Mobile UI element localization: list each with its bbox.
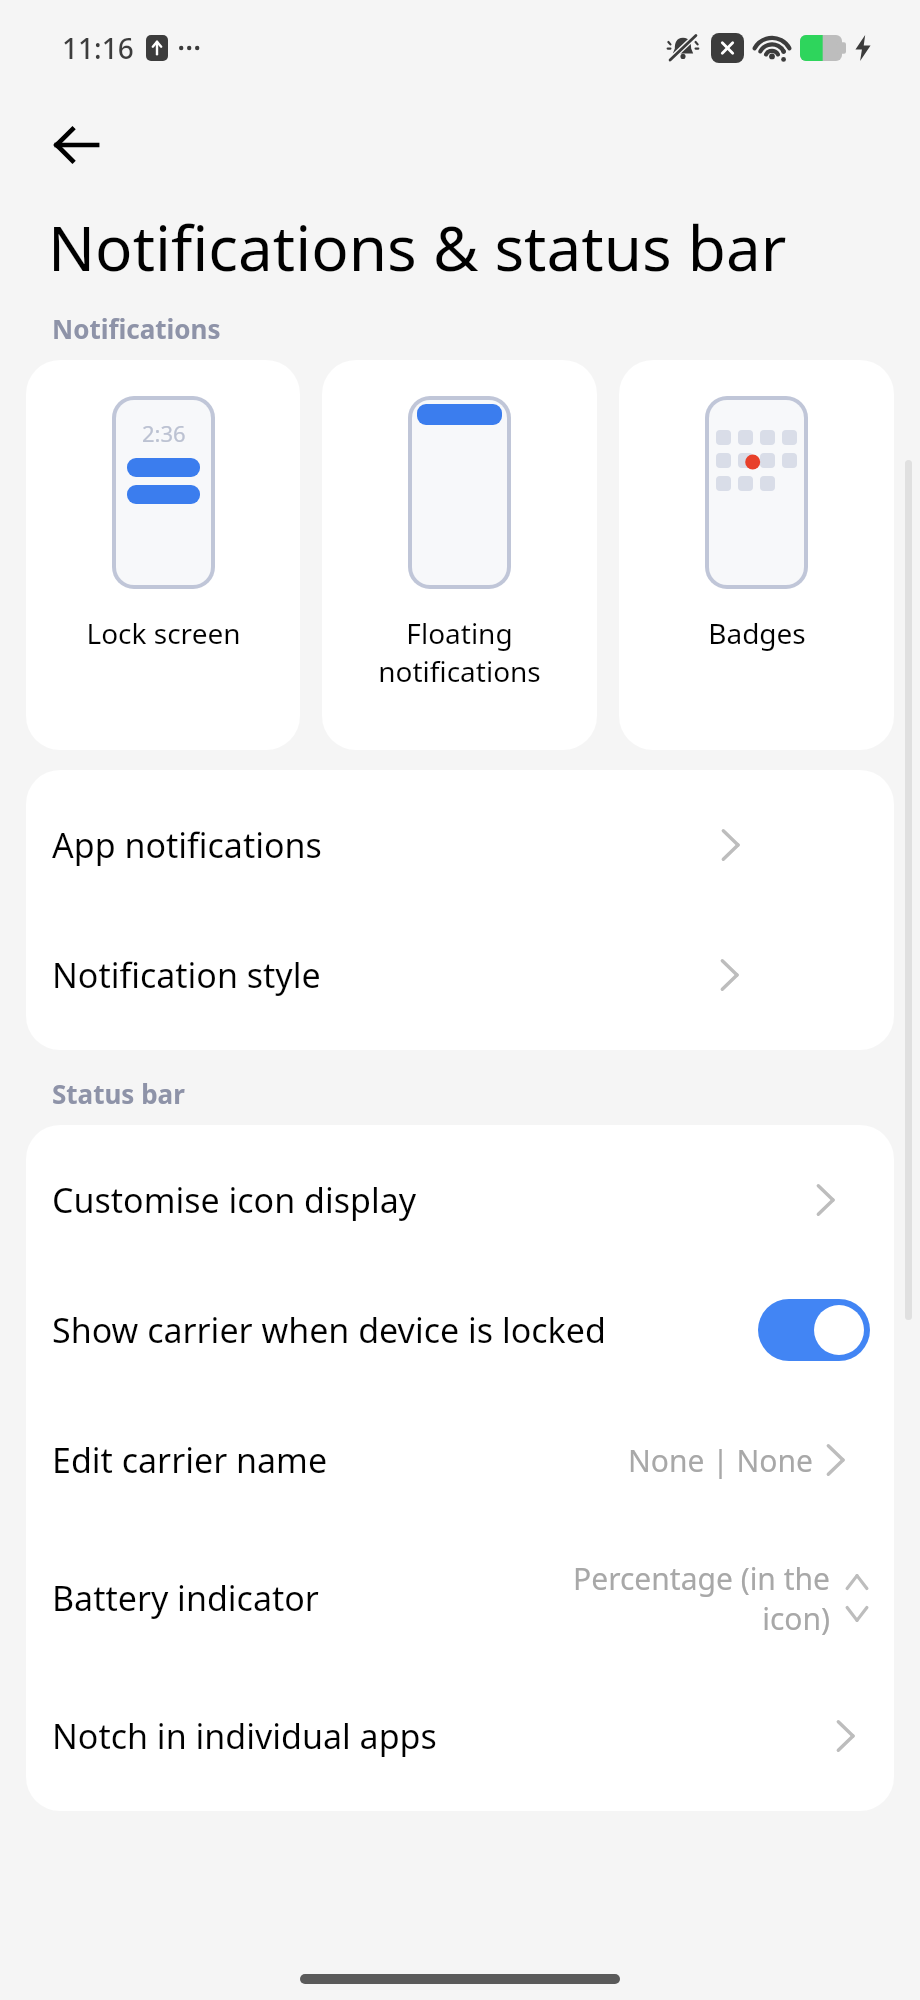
staticText: Show carrier when device is locked (52, 1307, 748, 1353)
staticText: 11:16 (62, 29, 134, 67)
staticText: 2:36 (142, 418, 186, 448)
button[interactable]: Customise icon display (26, 1135, 894, 1265)
staticText: Percentage (in the icon) (573, 1558, 830, 1639)
staticText: Status bar (52, 1076, 185, 1111)
staticText: Battery indicator (52, 1575, 319, 1621)
button[interactable]: Edit carrier name (26, 1395, 894, 1525)
button[interactable]: Floating notifications (322, 360, 597, 750)
staticText: Customise icon display (52, 1177, 417, 1223)
staticText: Notifications & status bar (48, 205, 787, 289)
staticText: None | None (628, 1440, 813, 1481)
button[interactable]: Battery indicator (26, 1525, 894, 1671)
button[interactable]: Badges (619, 360, 894, 750)
button[interactable] (758, 1299, 870, 1361)
button[interactable]: Notification style (26, 910, 894, 1040)
staticText: Notification style (52, 952, 321, 998)
staticText: Badges (708, 614, 806, 652)
button[interactable]: App notifications (26, 780, 894, 910)
staticText: Lock screen (86, 614, 241, 652)
button[interactable]: Back (40, 109, 112, 181)
staticText: App notifications (52, 822, 322, 868)
staticText: Edit carrier name (52, 1437, 328, 1483)
button[interactable]: Notch in individual apps (26, 1671, 894, 1801)
button[interactable]: 2:36 (26, 360, 300, 750)
staticText: Notch in individual apps (52, 1713, 437, 1759)
staticText: Notifications (52, 311, 221, 346)
staticText: Floating notifications (378, 614, 541, 690)
button[interactable]: Show carrier when device is locked (26, 1265, 894, 1395)
